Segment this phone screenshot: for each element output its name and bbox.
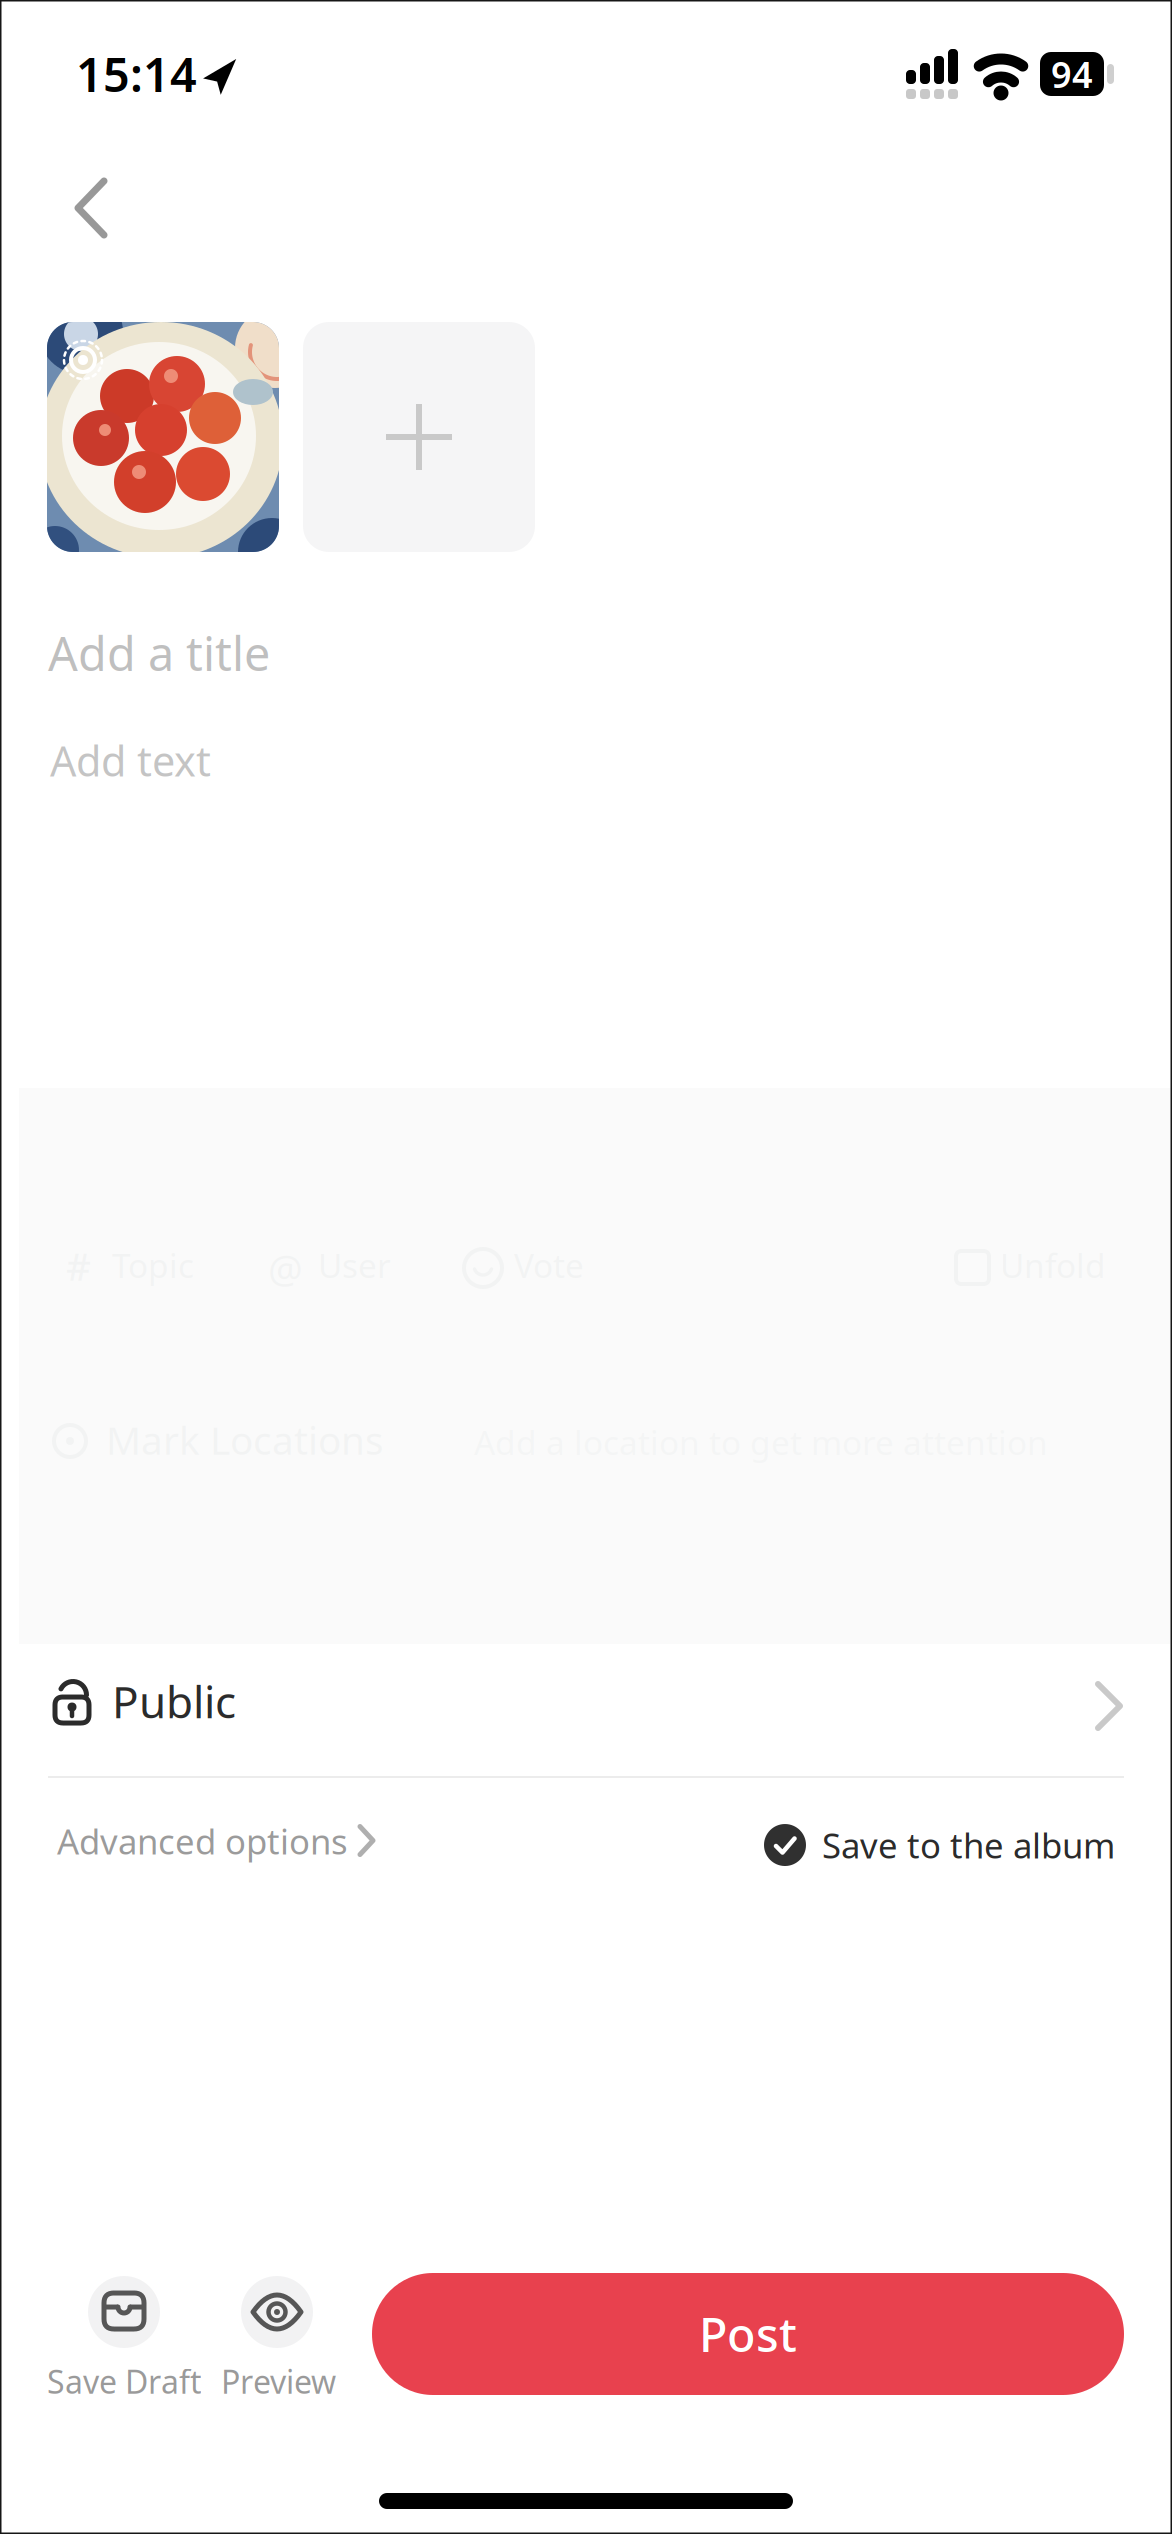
staticText: Add text <box>50 733 211 788</box>
staticText: 94 <box>1051 50 1093 98</box>
button[interactable]: Photo <box>47 322 279 552</box>
staticText: Add a title <box>48 622 270 684</box>
staticText: Advanced options <box>57 1818 348 1864</box>
button[interactable]: Add photo <box>303 322 535 552</box>
staticText: 15:14 <box>76 43 197 105</box>
staticText: Preview <box>221 2360 336 2402</box>
button[interactable]: Back <box>54 157 129 260</box>
button[interactable]: Save Draft <box>88 2276 160 2348</box>
staticText: Post <box>699 2303 797 2365</box>
staticText: Save to the album <box>822 1822 1115 1868</box>
button[interactable]: Public <box>0 1648 1172 1764</box>
button[interactable]: Advanced options <box>57 1818 374 1864</box>
button[interactable]: Post <box>372 2273 1124 2395</box>
staticText: Public <box>112 1672 236 1730</box>
button[interactable]: Save to the album <box>764 1822 1115 1868</box>
staticText: Save Draft <box>47 2360 202 2402</box>
button[interactable]: Preview <box>241 2276 313 2348</box>
